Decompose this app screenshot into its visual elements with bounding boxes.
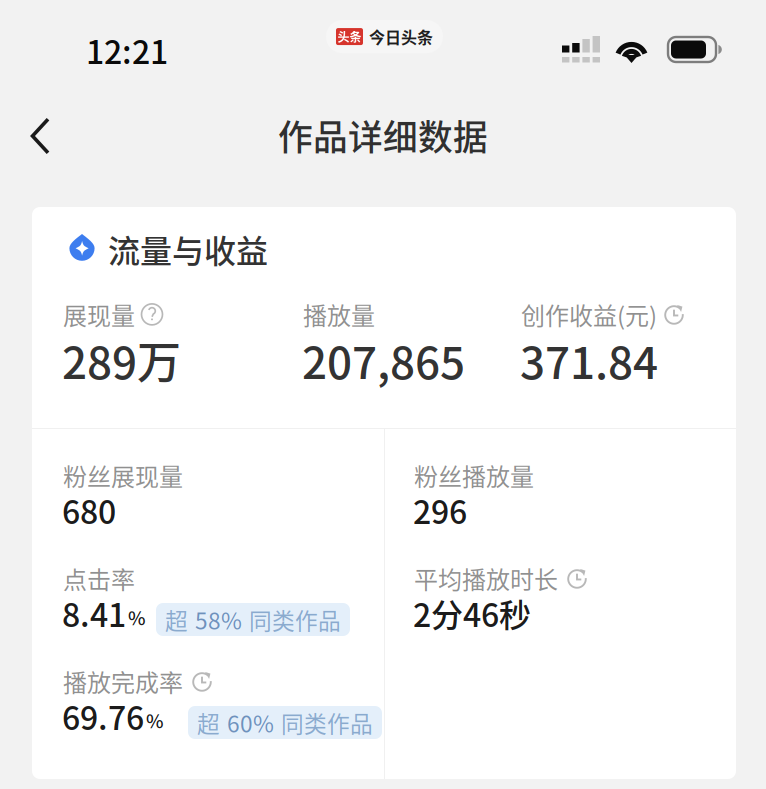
staticText: 点击率 [63,561,135,596]
staticText: 296 [413,487,467,533]
staticText: 粉丝展现量 [63,458,183,493]
staticText: 58% [195,603,242,636]
staticText: 流量与收益 [108,226,268,272]
staticText: 播放完成率 [63,664,183,699]
staticText: 371.84 [520,328,658,392]
staticText: 播放量 [303,297,375,332]
button[interactable]: 返回 [10,106,70,166]
staticText: 289万 [62,328,181,392]
staticText: 平均播放时长 [414,561,558,596]
staticText: 同类作品 [249,603,341,636]
staticText: 680 [62,487,116,533]
staticText: 69.76 [62,693,144,739]
staticText: 60% [227,706,274,739]
staticText: % [146,707,164,734]
staticText: 作品详细数据 [278,110,488,160]
staticText: 展现量 [63,297,135,332]
staticText: 头条 [337,28,361,45]
staticText: 超 [197,706,220,739]
staticText: 207,865 [302,328,465,392]
staticText: 12:21 [86,27,168,73]
staticText: % [128,604,146,631]
staticText: 超 [165,603,188,636]
staticText: 粉丝播放量 [414,458,534,493]
staticText: 今日头条 [369,25,433,48]
staticText: 创作收益(元) [521,297,657,332]
staticText: 2分46秒 [413,590,531,636]
staticText: 同类作品 [281,706,373,739]
staticText: 8.41 [62,590,126,636]
